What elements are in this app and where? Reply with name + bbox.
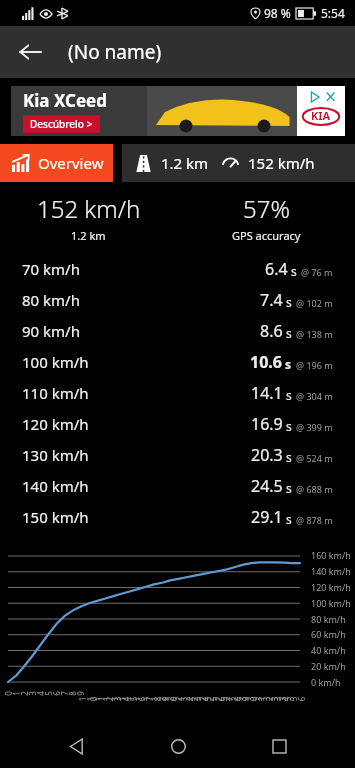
button[interactable]: 1.2 km bbox=[122, 144, 355, 182]
staticText: 13 bbox=[101, 695, 123, 703]
button[interactable]: Home bbox=[152, 724, 204, 768]
staticText: 16.9 bbox=[251, 413, 283, 435]
staticText: 29 bbox=[229, 695, 251, 703]
button[interactable]: Back bbox=[8, 30, 52, 74]
staticText: 31 bbox=[245, 695, 267, 703]
staticText: 7 bbox=[59, 691, 70, 696]
staticText: s bbox=[286, 294, 292, 310]
staticText: @ 878 m bbox=[296, 514, 333, 526]
staticText: @ 76 m bbox=[301, 266, 333, 278]
staticText: s bbox=[286, 325, 292, 341]
staticText: 24.5 bbox=[251, 475, 283, 497]
staticText: 4 bbox=[35, 691, 46, 696]
staticText: s bbox=[285, 356, 292, 372]
staticText: 1 bbox=[11, 691, 22, 696]
staticText: @ 688 m bbox=[296, 483, 333, 495]
staticText: 6 bbox=[51, 691, 62, 696]
staticText: 20 km/h bbox=[311, 660, 346, 672]
staticText: s bbox=[286, 387, 292, 403]
staticText: @ 524 m bbox=[296, 452, 333, 464]
staticText: s bbox=[286, 511, 292, 527]
staticText: 90 km/h bbox=[22, 321, 80, 341]
staticText: 25 bbox=[197, 695, 219, 703]
staticText: 33 bbox=[261, 695, 283, 703]
staticText: 70 km/h bbox=[22, 259, 80, 279]
staticText: Overview bbox=[38, 153, 104, 173]
staticText: @ 196 m bbox=[296, 359, 333, 371]
button[interactable]: Overview bbox=[0, 144, 113, 182]
staticText: 0 km/h bbox=[311, 676, 341, 688]
staticText: s bbox=[286, 418, 292, 434]
staticText: 150 km/h bbox=[22, 507, 89, 527]
staticText: 140 km/h bbox=[311, 565, 351, 577]
button[interactable]: Back bbox=[50, 724, 102, 768]
staticText: 2 bbox=[19, 691, 30, 696]
button[interactable]: Kia XCeed bbox=[11, 86, 345, 136]
staticText: 5:54 bbox=[321, 5, 345, 21]
staticText: 152 km/h bbox=[37, 192, 141, 225]
staticText: 98 % bbox=[264, 5, 291, 21]
staticText: 11 bbox=[85, 695, 107, 703]
staticText: 1.2 km bbox=[161, 153, 209, 173]
staticText: 20 bbox=[157, 695, 179, 703]
staticText: 14 bbox=[109, 695, 131, 703]
staticText: 130 km/h bbox=[22, 445, 89, 465]
staticText: KIA bbox=[311, 108, 331, 123]
button[interactable]: 70 km/h bbox=[0, 253, 355, 284]
button[interactable]: 150 km/h bbox=[0, 501, 355, 532]
staticText: 23 bbox=[181, 695, 203, 703]
staticText: 14.1 bbox=[251, 382, 283, 404]
staticText: 21 bbox=[165, 695, 187, 703]
staticText: 7.4 bbox=[260, 289, 283, 311]
staticText: s bbox=[286, 449, 292, 465]
staticText: GPS accuracy bbox=[232, 228, 301, 243]
staticText: 17 bbox=[133, 695, 155, 703]
button[interactable]: Recents bbox=[253, 724, 305, 768]
staticText: 35 bbox=[277, 695, 299, 703]
staticText: s bbox=[291, 263, 297, 279]
staticText: 26 bbox=[205, 695, 227, 703]
staticText: 20.3 bbox=[251, 444, 283, 466]
staticText: 57% bbox=[243, 192, 290, 225]
staticText: @ 102 m bbox=[296, 297, 333, 309]
staticText: 10.6 bbox=[250, 351, 282, 373]
staticText: 60 km/h bbox=[311, 628, 346, 640]
staticText: 24 bbox=[189, 695, 211, 703]
staticText: 0 bbox=[3, 691, 14, 696]
staticText: 10 bbox=[77, 695, 99, 703]
staticText: 120 km/h bbox=[311, 581, 351, 593]
staticText: 16 bbox=[125, 695, 147, 703]
staticText: 19 bbox=[149, 695, 171, 703]
staticText: 36 bbox=[285, 695, 307, 703]
staticText: Descúbrelo > bbox=[30, 117, 93, 131]
staticText: 29.1 bbox=[251, 506, 283, 528]
staticText: s bbox=[286, 480, 292, 496]
staticText: 27 bbox=[213, 695, 235, 703]
staticText: 40 km/h bbox=[311, 644, 346, 656]
staticText: 5 bbox=[43, 691, 54, 696]
button[interactable]: 80 km/h bbox=[0, 284, 355, 315]
button[interactable]: 100 km/h bbox=[0, 346, 355, 377]
staticText: 100 km/h bbox=[22, 352, 89, 372]
staticText: @ 304 m bbox=[296, 390, 333, 402]
staticText: 160 km/h bbox=[311, 549, 351, 561]
staticText: 100 km/h bbox=[311, 597, 351, 609]
staticText: 8 bbox=[67, 691, 78, 696]
staticText: 18 bbox=[141, 695, 163, 703]
button[interactable]: 90 km/h bbox=[0, 315, 355, 346]
staticText: 30 bbox=[237, 695, 259, 703]
staticText: 12 bbox=[93, 695, 115, 703]
staticText: 3 bbox=[27, 691, 38, 696]
button[interactable]: 110 km/h bbox=[0, 377, 355, 408]
staticText: 110 km/h bbox=[22, 383, 89, 403]
staticText: 1.2 km bbox=[71, 228, 106, 243]
staticText: 34 bbox=[269, 695, 291, 703]
button[interactable]: 120 km/h bbox=[0, 408, 355, 439]
staticText: 80 km/h bbox=[311, 613, 346, 625]
button[interactable]: 140 km/h bbox=[0, 470, 355, 501]
staticText: 80 km/h bbox=[22, 290, 80, 310]
button[interactable]: 130 km/h bbox=[0, 439, 355, 470]
staticText: 152 km/h bbox=[248, 153, 315, 173]
staticText: 22 bbox=[173, 695, 195, 703]
staticText: 15 bbox=[117, 695, 139, 703]
